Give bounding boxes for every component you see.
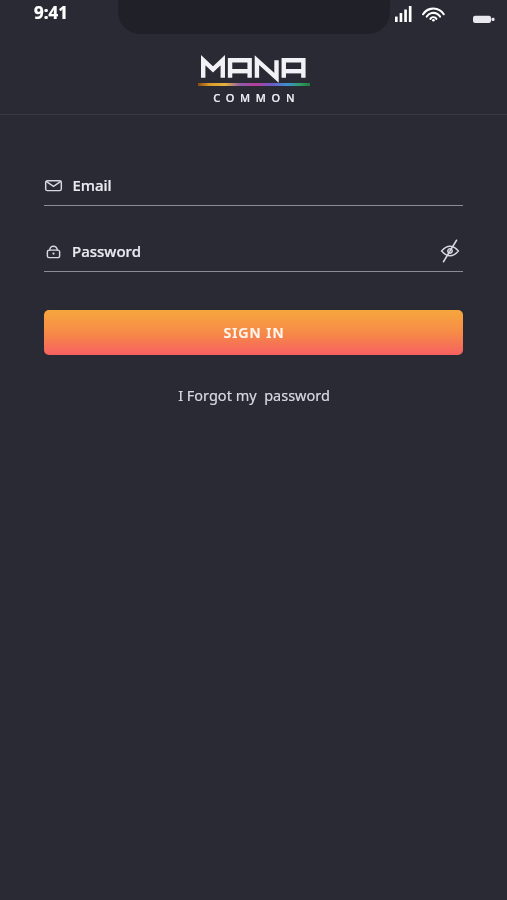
button[interactable]: Email — [44, 170, 463, 206]
button[interactable]: I Forgot my password — [172, 381, 336, 409]
staticText: Password — [72, 241, 141, 261]
button[interactable]: Password — [44, 236, 463, 272]
staticText: C O M M O N — [213, 90, 296, 105]
staticText: Email — [72, 175, 112, 195]
button[interactable]: Show password — [437, 238, 463, 264]
button[interactable]: SIGN IN — [44, 310, 463, 355]
staticText: SIGN IN — [223, 323, 285, 342]
staticText: I Forgot my password — [178, 385, 330, 405]
staticText: 9:41 — [34, 1, 68, 24]
